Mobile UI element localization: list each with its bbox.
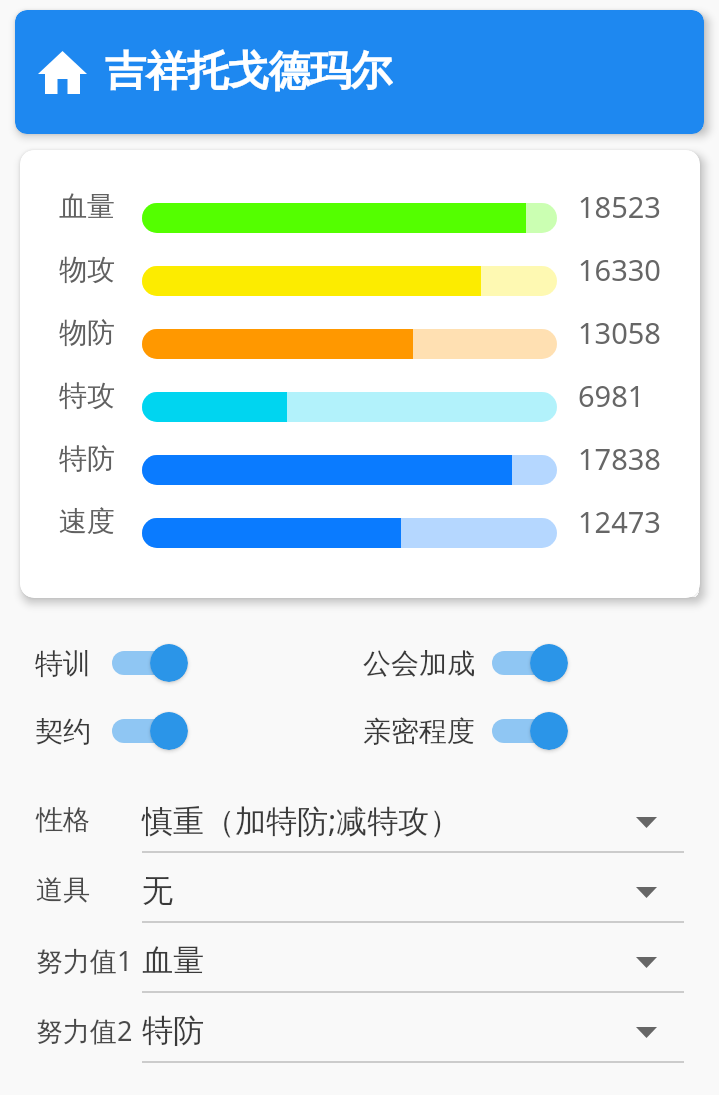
button[interactable] (112, 711, 188, 751)
staticText: 速度 (59, 504, 115, 539)
staticText: 亲密程度 (363, 714, 475, 749)
staticText: 特训 (35, 646, 91, 681)
staticText: 13058 (578, 313, 661, 352)
staticText: 吉祥托戈德玛尔 (105, 46, 392, 98)
button[interactable] (492, 711, 568, 751)
button[interactable]: 努力值2 (0, 995, 719, 1065)
staticText: 12473 (578, 502, 661, 541)
staticText: 18523 (578, 187, 661, 226)
staticText: 努力值2 (36, 1012, 133, 1049)
staticText: 物防 (59, 315, 115, 350)
staticText: 血量 (59, 189, 115, 224)
staticText: 公会加成 (363, 646, 475, 681)
button[interactable]: 努力值1 (0, 925, 719, 995)
staticText: 物攻 (59, 252, 115, 287)
staticText: 16330 (578, 250, 661, 289)
button[interactable]: 道具 (0, 855, 719, 925)
button[interactable]: 吉祥托戈德玛尔 (15, 10, 704, 134)
staticText: 慎重（加特防;减特攻） (142, 799, 461, 841)
staticText: 无 (142, 871, 173, 910)
staticText: 努力值1 (36, 942, 133, 979)
staticText: 性格 (36, 803, 90, 837)
staticText: 6981 (578, 376, 645, 415)
staticText: 契约 (35, 714, 91, 749)
staticText: 道具 (36, 873, 90, 907)
button[interactable] (492, 643, 568, 683)
staticText: 血量 (142, 941, 204, 980)
staticText: 特防 (59, 441, 115, 476)
staticText: 特攻 (59, 378, 115, 413)
button[interactable]: 性格 (0, 785, 719, 855)
staticText: 特防 (142, 1011, 204, 1050)
button[interactable] (112, 643, 188, 683)
staticText: 17838 (578, 439, 661, 478)
